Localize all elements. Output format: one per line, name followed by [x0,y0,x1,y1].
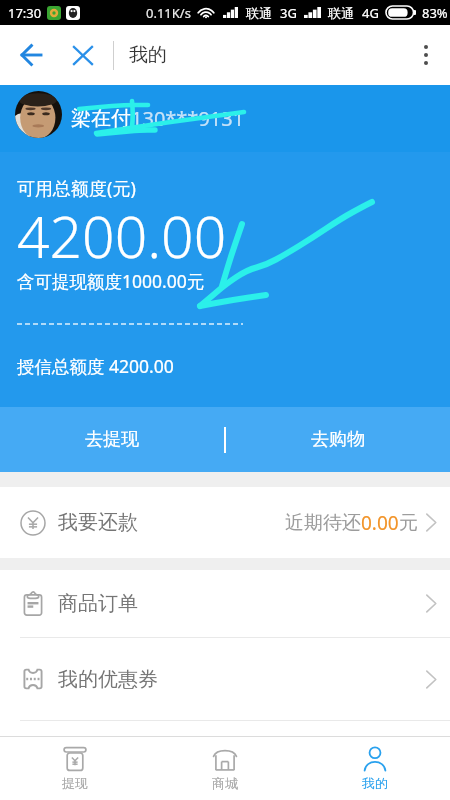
staticText: 梁在付 [71,106,131,131]
button[interactable]: Close [60,32,105,78]
staticText: 元 [399,511,418,535]
staticText: 去购物 [311,428,365,451]
staticText: 商品订单 [58,591,138,616]
button[interactable]: 提现 [0,737,150,800]
button[interactable]: 我的优惠券 [0,638,450,720]
staticText: 提现 [62,775,88,791]
staticText: 含可提现额度1000.00元 [17,269,205,293]
button[interactable]: 我的 [300,737,450,800]
button[interactable]: 去购物 [226,407,450,472]
staticText: 0.11K/s [146,4,191,22]
staticText: 联通 [246,5,272,21]
staticText: 我的 [129,43,167,67]
staticText: 授信总额度 4200.00 [17,354,174,378]
staticText: 我要还款 [58,510,138,535]
button[interactable]: 商品订单 [0,570,450,637]
staticText: 17:30 [8,4,42,22]
staticText: 联通 [328,5,354,21]
staticText: 去提现 [85,428,139,451]
staticText: 近期待还 [285,511,361,535]
staticText: 4G [362,4,379,22]
staticText: 可用总额度(元) [17,176,136,201]
staticText: 83% [422,4,448,22]
staticText: 4200.00 [17,197,227,275]
button[interactable]: Back [7,32,55,78]
staticText: 我的 [362,775,388,791]
button[interactable]: More options [402,25,450,85]
button[interactable]: 商城 [150,737,300,800]
staticText: 我的优惠券 [58,667,158,692]
staticText: 130***9131 [131,105,245,132]
button[interactable]: 去提现 [0,407,224,472]
staticText: 0.00 [361,510,399,536]
button[interactable]: 梁在付 [0,85,450,152]
staticText: 3G [280,4,297,22]
button[interactable]: 我要还款 [0,487,450,558]
staticText: 商城 [212,775,238,791]
